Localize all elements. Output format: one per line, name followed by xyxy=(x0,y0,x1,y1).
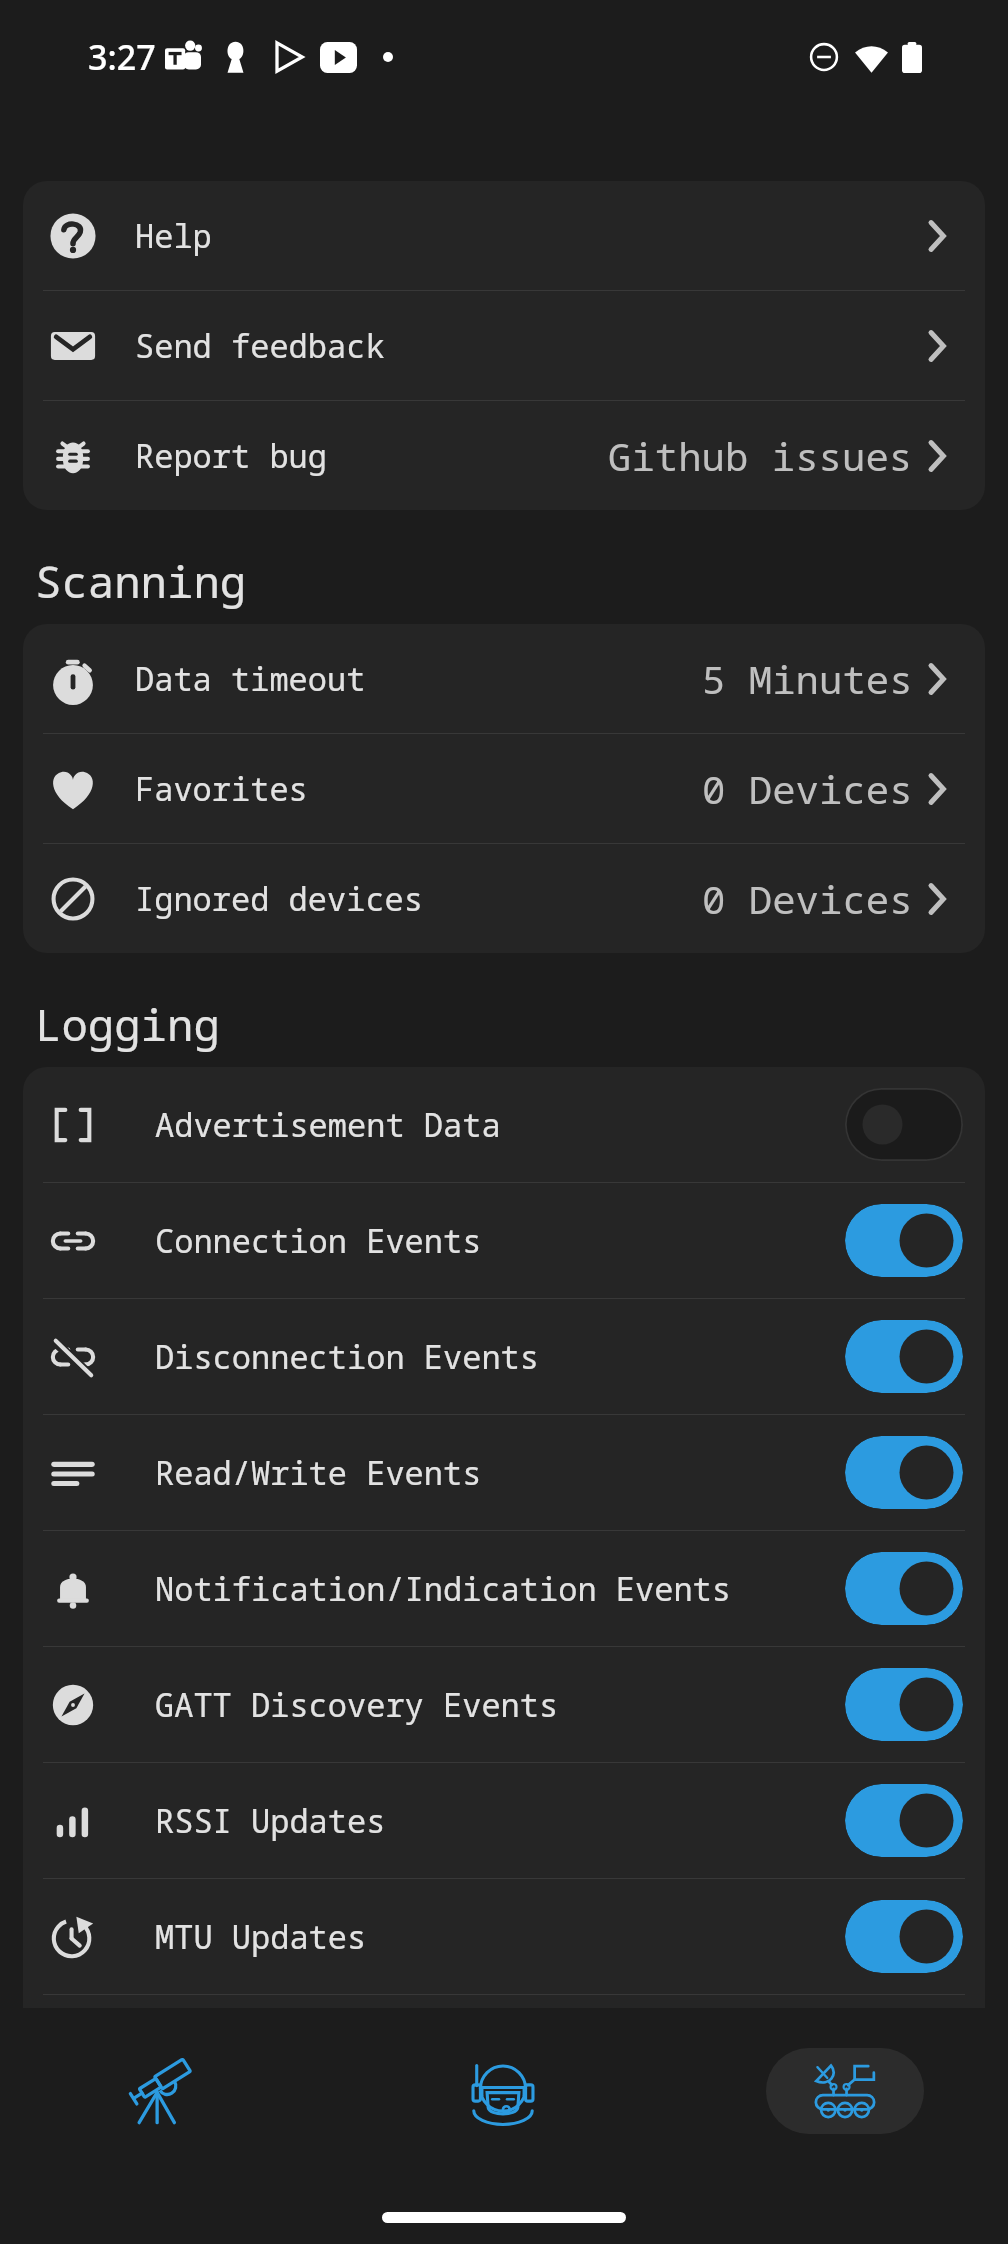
button[interactable]: Send feedback xyxy=(23,291,985,400)
button[interactable]: On xyxy=(845,1204,963,1277)
button[interactable]: On xyxy=(845,1552,963,1625)
staticText: Data timeout xyxy=(135,657,366,701)
button[interactable]: Advertisement Data xyxy=(23,1067,985,1182)
staticText: Send feedback xyxy=(135,324,385,368)
staticText: Scanning xyxy=(35,551,247,611)
button[interactable]: Report bug xyxy=(23,401,985,510)
button[interactable]: On xyxy=(845,1320,963,1393)
staticText: RSSI Updates xyxy=(155,1799,386,1843)
button[interactable]: Connection Events xyxy=(23,1183,985,1298)
button[interactable]: PHY Updates xyxy=(23,1995,985,2110)
staticText: Ignored devices xyxy=(135,877,424,921)
staticText: Advertisement Data xyxy=(155,1103,501,1147)
button[interactable]: RSSI Updates xyxy=(23,1763,985,1878)
button[interactable]: On xyxy=(845,1900,963,1973)
button[interactable]: MTU Updates xyxy=(23,1879,985,1994)
staticText: 0 Devices xyxy=(702,872,913,925)
staticText: 0 Devices xyxy=(702,762,913,815)
staticText: Report bug xyxy=(135,434,328,478)
staticText: Read/Write Events xyxy=(155,1451,482,1495)
button[interactable]: Help xyxy=(23,181,985,290)
button[interactable]: GATT Discovery Events xyxy=(23,1647,985,1762)
button[interactable]: Favorites xyxy=(23,734,985,843)
staticText: Github issues xyxy=(608,429,913,482)
staticText: Help xyxy=(135,214,212,258)
button[interactable]: Off xyxy=(845,1088,963,1161)
button[interactable]: Data timeout xyxy=(23,624,985,733)
staticText: GATT Discovery Events xyxy=(155,1683,559,1727)
button[interactable]: Ignored devices xyxy=(23,844,985,953)
button[interactable]: Devices xyxy=(336,2016,672,2166)
button[interactable]: Disconnection Events xyxy=(23,1299,985,1414)
button[interactable]: On xyxy=(845,1436,963,1509)
staticText: Notification/Indication Events xyxy=(155,1567,732,1611)
button[interactable]: Scanner xyxy=(0,2016,336,2166)
staticText: Connection Events xyxy=(155,1219,482,1263)
button[interactable]: Settings xyxy=(766,2048,924,2134)
button[interactable]: On xyxy=(845,2016,963,2089)
staticText: 5 Minutes xyxy=(702,652,913,705)
button[interactable]: On xyxy=(845,1668,963,1741)
staticText: PHY Updates xyxy=(155,2031,367,2075)
staticText: Favorites xyxy=(135,767,308,811)
button[interactable]: Notification/Indication Events xyxy=(23,1531,985,1646)
staticText: Disconnection Events xyxy=(155,1335,540,1379)
staticText: MTU Updates xyxy=(155,1915,367,1959)
staticText: Logging xyxy=(35,994,220,1054)
staticText: 3:27 xyxy=(88,34,156,80)
button[interactable]: On xyxy=(845,1784,963,1857)
button[interactable]: Read/Write Events xyxy=(23,1415,985,1530)
